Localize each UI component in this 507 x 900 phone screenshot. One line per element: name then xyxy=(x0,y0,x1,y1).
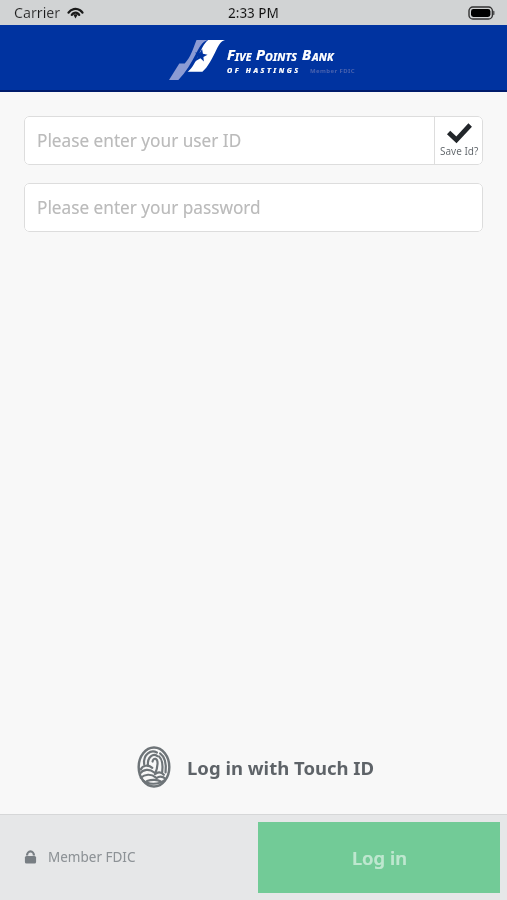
button[interactable]: Save Id xyxy=(435,116,483,165)
staticText: 2:33 PM xyxy=(228,4,279,22)
staticText: Please enter your password xyxy=(37,196,261,219)
button[interactable]: Please enter your password xyxy=(24,183,483,232)
staticText: P xyxy=(256,44,265,64)
staticText: Log in xyxy=(352,845,407,870)
staticText: B xyxy=(302,44,312,64)
button[interactable]: Please enter your user ID xyxy=(24,116,434,165)
staticText: Carrier xyxy=(14,3,61,22)
staticText: OINTS xyxy=(265,50,298,64)
staticText: Member FDIC xyxy=(310,67,355,75)
button[interactable]: Log in with Touch ID xyxy=(125,738,383,796)
staticText: OF HASTINGS xyxy=(227,65,301,75)
staticText: ANK xyxy=(312,50,334,64)
button[interactable]: Member FDIC xyxy=(20,842,140,872)
staticText: Log in with Touch ID xyxy=(187,755,375,780)
staticText: Save Id? xyxy=(440,144,479,158)
staticText: IVE xyxy=(235,50,252,64)
button[interactable]: Log in xyxy=(258,822,500,893)
staticText: F xyxy=(227,44,235,64)
staticText: Please enter your user ID xyxy=(37,129,242,152)
staticText: Member FDIC xyxy=(48,848,136,866)
